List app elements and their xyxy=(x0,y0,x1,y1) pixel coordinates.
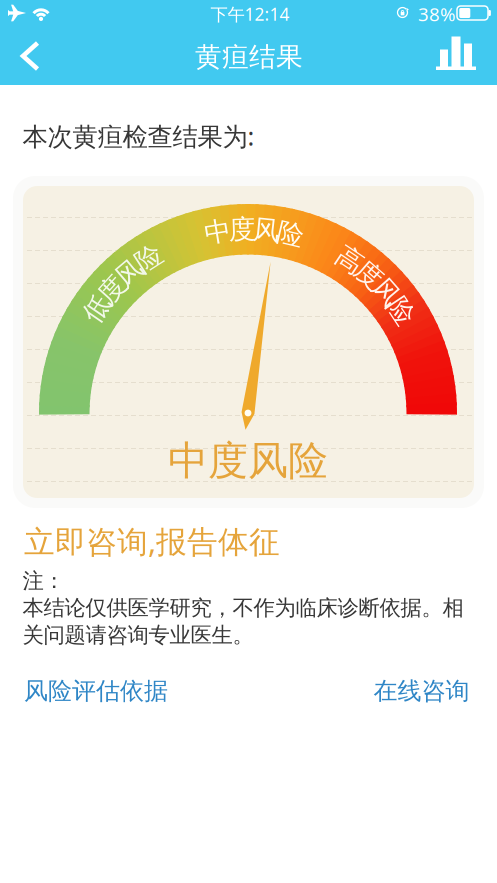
button[interactable]: 在线咨询 xyxy=(373,676,469,706)
staticText: 险 xyxy=(135,242,162,275)
staticText: 险 xyxy=(277,218,304,251)
staticText: 本次黄疸检查结果为: xyxy=(22,119,254,153)
staticText: 中 xyxy=(204,215,231,248)
staticText: 38% xyxy=(418,2,456,26)
button[interactable]: 立即咨询,报告体征 xyxy=(24,521,280,561)
staticText: 本结论仅供医学研究，不作为临床诊断依据。相 xyxy=(22,595,463,621)
button[interactable]: 风险评估依据 xyxy=(24,676,168,706)
staticText: 风险评估依据 xyxy=(24,676,168,706)
button[interactable]: Back xyxy=(2,28,58,84)
staticText: 度 xyxy=(355,258,382,291)
staticText: 注： xyxy=(22,568,64,594)
staticText: 在线咨询 xyxy=(373,676,469,706)
staticText: 险 xyxy=(387,295,414,328)
staticText: 度 xyxy=(229,213,256,246)
staticText: 风 xyxy=(373,276,400,308)
staticText: 黄疸结果 xyxy=(195,41,303,73)
staticText: 中度风险 xyxy=(168,436,328,485)
staticText: 风 xyxy=(116,256,143,289)
staticText: 立即咨询,报告体征 xyxy=(24,521,280,561)
button[interactable]: Chart xyxy=(428,28,484,84)
staticText: 关问题请咨询专业医生。 xyxy=(22,622,253,648)
staticText: 低 xyxy=(83,292,110,325)
staticText: 度 xyxy=(98,273,125,306)
staticText: 下午12:14 xyxy=(210,2,289,25)
staticText: 高 xyxy=(336,244,363,276)
staticText: 风 xyxy=(253,214,280,247)
